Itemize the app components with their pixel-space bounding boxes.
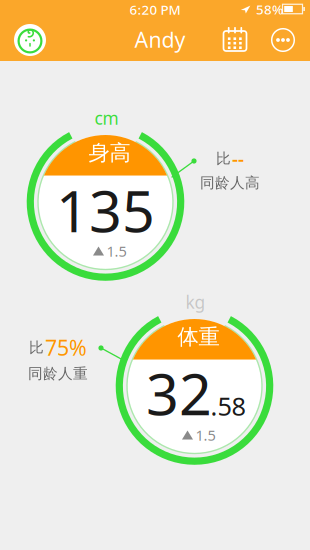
staticText: 1.5 bbox=[106, 241, 126, 261]
staticText: cm bbox=[94, 106, 118, 129]
button[interactable]: Calendar bbox=[214, 19, 256, 61]
button[interactable]: 体重 32.58 kg bbox=[0, 0, 310, 550]
staticText: 同龄人重 bbox=[28, 365, 88, 383]
staticText: 32 bbox=[146, 355, 212, 431]
staticText: 体重 bbox=[177, 324, 219, 350]
staticText: 同龄人高 bbox=[200, 174, 260, 192]
button[interactable]: Andy bbox=[125, 22, 195, 56]
staticText: 6:20 PM bbox=[129, 1, 180, 18]
staticText: .58 bbox=[210, 389, 245, 423]
button[interactable]: More options bbox=[262, 19, 304, 61]
button[interactable]: 身高 135 cm bbox=[0, 0, 310, 550]
staticText: kg bbox=[185, 290, 205, 313]
staticText: Andy bbox=[134, 25, 185, 54]
button[interactable]: Profile bbox=[10, 20, 50, 60]
staticText: 比 bbox=[29, 338, 44, 356]
staticText: 75% bbox=[45, 333, 87, 362]
staticText: -- bbox=[232, 146, 244, 171]
staticText: 比 bbox=[216, 149, 231, 167]
staticText: 1.5 bbox=[195, 425, 215, 445]
staticText: 身高 bbox=[88, 140, 130, 166]
staticText: 58% bbox=[256, 0, 283, 18]
staticText: 135 bbox=[56, 172, 155, 248]
